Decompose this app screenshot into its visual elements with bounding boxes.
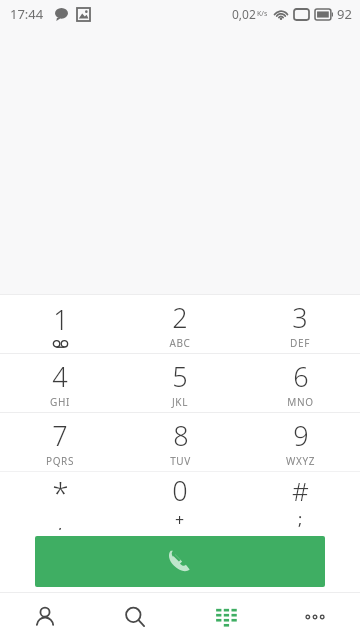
button[interactable]: 3	[240, 295, 360, 353]
staticText: JKL	[172, 395, 188, 409]
button[interactable]: 9	[240, 413, 360, 471]
button[interactable]: 2	[120, 295, 240, 353]
staticText: WXYZ	[286, 454, 315, 468]
staticText: K/s	[257, 9, 268, 19]
staticText: MNO	[287, 395, 314, 409]
button[interactable]: Call	[35, 536, 325, 587]
staticText: TUV	[170, 454, 191, 468]
staticText: #	[292, 473, 309, 508]
staticText: 92	[337, 5, 352, 23]
button[interactable]: #	[240, 472, 360, 530]
staticText: 7	[52, 417, 68, 454]
staticText: 9	[293, 417, 309, 454]
staticText: 0,02	[232, 6, 256, 22]
staticText: 8	[173, 417, 189, 454]
button[interactable]: Dialpad	[180, 593, 270, 640]
staticText: 4	[52, 358, 68, 395]
button[interactable]: *	[0, 472, 120, 530]
button[interactable]: 5	[120, 354, 240, 412]
button[interactable]: 4	[0, 354, 120, 412]
staticText: ,	[58, 513, 63, 530]
staticText: +	[175, 509, 185, 530]
button[interactable]: 8	[120, 413, 240, 471]
button[interactable]: More	[270, 593, 360, 640]
staticText: 2	[172, 299, 188, 336]
staticText: ABC	[169, 336, 191, 350]
button[interactable]: 7	[0, 413, 120, 471]
staticText: 1	[53, 301, 69, 338]
button[interactable]: 0	[120, 472, 240, 530]
button[interactable]: Contacts	[0, 593, 90, 640]
staticText: 0	[172, 472, 188, 509]
staticText: *	[52, 472, 69, 513]
button[interactable]: Search	[90, 593, 180, 640]
button[interactable]: 6	[240, 354, 360, 412]
staticText: ;	[298, 508, 303, 530]
staticText: DEF	[290, 336, 310, 350]
staticText: 17:44	[10, 5, 44, 23]
staticText: 6	[293, 358, 309, 395]
staticText: 3	[292, 299, 308, 336]
staticText: PQRS	[46, 454, 74, 468]
staticText: 5	[172, 358, 188, 395]
staticText: GHI	[50, 395, 70, 409]
button[interactable]: 1	[0, 295, 120, 353]
